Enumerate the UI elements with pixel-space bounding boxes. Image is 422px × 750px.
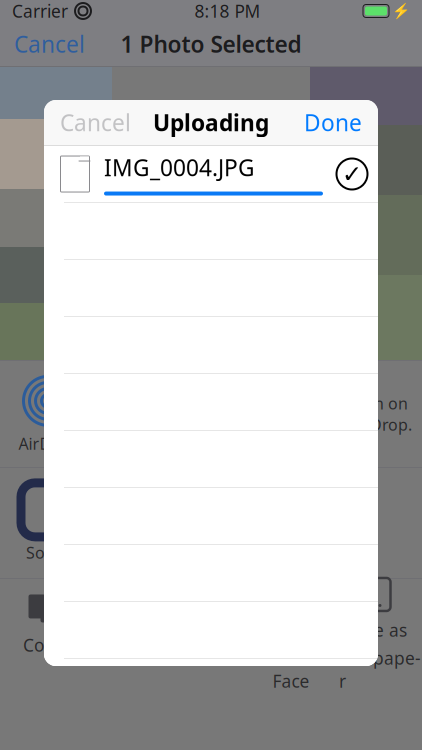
staticText: Wallpaper: [339, 646, 421, 692]
button[interactable]: Slideshow: [85, 590, 169, 677]
staticText: Carrier: [12, 0, 68, 22]
staticText: +: [206, 581, 220, 613]
staticText: Done: [304, 107, 362, 137]
staticText: Use as: [353, 618, 407, 641]
staticText: Add to Album: [186, 622, 240, 668]
staticText: Copy: [23, 633, 63, 656]
button[interactable]: Create: [257, 575, 339, 693]
staticText: Cancel: [14, 29, 85, 59]
button[interactable]: +: [169, 579, 257, 689]
staticText: 1 Photo Selected: [120, 29, 301, 59]
staticText: Cancel: [60, 107, 131, 137]
staticText: Social: [26, 542, 70, 563]
staticText: Watch Face: [272, 646, 323, 692]
staticText: AirDrop: [18, 433, 77, 454]
staticText: IMG_0004.JPG: [104, 152, 255, 182]
button[interactable]: Cancel: [44, 100, 147, 144]
staticText: Uploading: [153, 107, 269, 137]
staticText: Turn on AirDrop.: [349, 393, 412, 435]
button[interactable]: Use as: [339, 575, 421, 693]
button[interactable]: Done: [288, 100, 378, 144]
staticText: 8:18 PM: [194, 0, 260, 22]
button[interactable]: Copy: [1, 590, 85, 677]
button[interactable]: Cancel: [0, 22, 99, 66]
staticText: ✓: [342, 160, 362, 188]
staticText: ⚡: [392, 3, 410, 19]
